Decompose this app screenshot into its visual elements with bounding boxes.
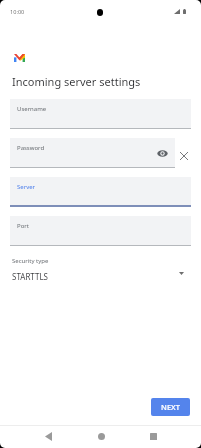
staticText: Password	[17, 144, 45, 152]
staticText: Username	[17, 105, 47, 113]
staticText: 10:00	[10, 8, 25, 16]
staticText: Port	[17, 222, 29, 230]
staticText: STARTTLS	[12, 271, 49, 282]
button[interactable]: Back	[35, 423, 61, 448]
button[interactable]: Show password	[155, 146, 169, 160]
button[interactable]: Recents	[140, 423, 166, 448]
button[interactable]: Server	[10, 177, 191, 207]
button[interactable]: Password	[10, 138, 175, 168]
button[interactable]: Port	[10, 216, 191, 246]
button[interactable]: Clear	[176, 148, 192, 164]
button[interactable]: Username	[10, 99, 191, 129]
button[interactable]: Home	[88, 423, 114, 448]
button[interactable]: NEXT	[151, 398, 190, 416]
staticText: Server	[17, 183, 36, 191]
staticText: NEXT	[161, 402, 180, 412]
button[interactable]: Security type	[0, 253, 201, 287]
staticText: Incoming server settings	[12, 74, 141, 89]
staticText: Security type	[12, 257, 49, 265]
